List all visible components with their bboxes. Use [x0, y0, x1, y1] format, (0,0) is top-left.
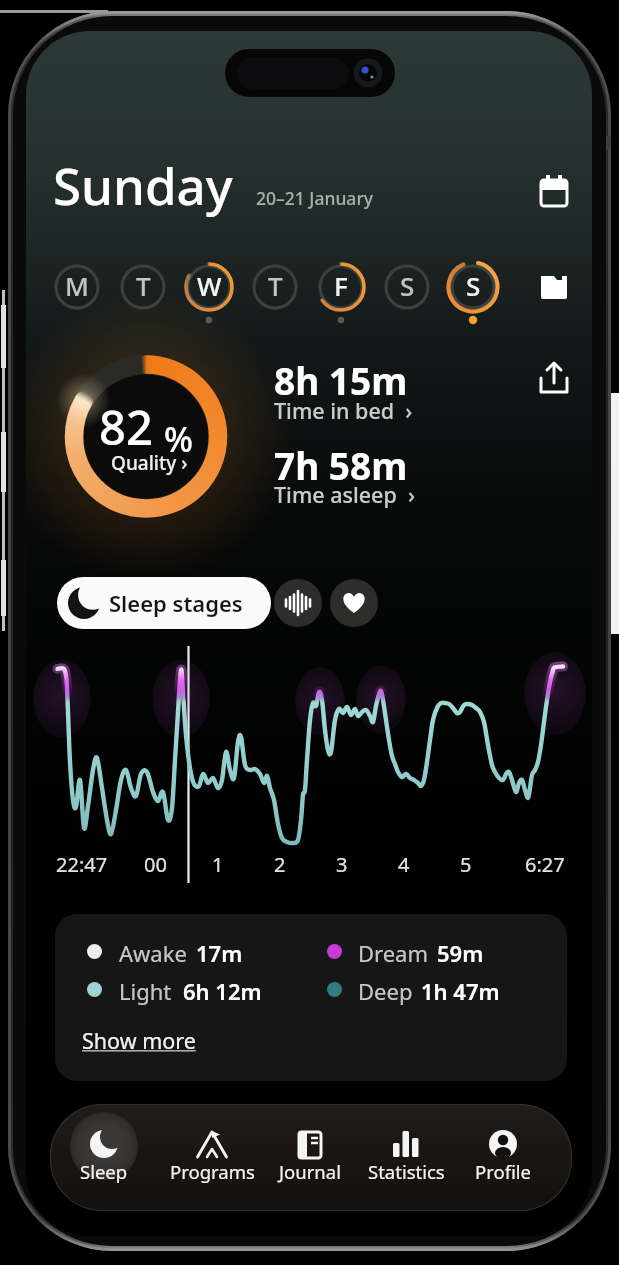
staticText: W: [197, 268, 222, 303]
staticText: Quality ›: [111, 450, 188, 476]
staticText: T: [136, 268, 151, 303]
staticText: 3: [336, 851, 348, 878]
button[interactable]: Statistics: [360, 1108, 452, 1206]
staticText: 4: [398, 851, 410, 878]
button[interactable]: Programs: [166, 1108, 258, 1206]
staticText: Profile: [475, 1159, 531, 1184]
staticText: 5: [460, 851, 472, 878]
button[interactable]: [48, 340, 244, 536]
button[interactable]: M: [51, 258, 103, 328]
staticText: 8h 15m: [274, 355, 408, 405]
staticText: Journal: [279, 1159, 341, 1184]
button[interactable]: T: [249, 258, 301, 328]
staticText: 82: [99, 395, 153, 459]
button[interactable]: Time in bed ›: [274, 396, 413, 425]
staticText: 20–21 January: [256, 186, 374, 210]
staticText: 22:47: [56, 851, 108, 878]
staticText: Statistics: [368, 1159, 445, 1184]
staticText: T: [268, 268, 283, 303]
staticText: F: [334, 268, 348, 303]
staticText: Light: [119, 976, 172, 1006]
staticText: 2: [274, 851, 286, 878]
staticText: M: [65, 268, 89, 303]
button[interactable]: S: [447, 258, 499, 328]
staticText: Dream: [358, 938, 429, 968]
staticText: 6:27: [525, 851, 565, 878]
button[interactable]: S: [381, 258, 433, 328]
staticText: Sunday: [53, 150, 233, 219]
staticText: Programs: [170, 1159, 255, 1184]
button[interactable]: W: [183, 258, 235, 328]
staticText: Sleep stages: [109, 588, 243, 618]
staticText: Time in bed ›: [274, 396, 413, 425]
staticText: 6h 12m: [183, 976, 262, 1006]
button[interactable]: [330, 579, 378, 627]
button[interactable]: [536, 170, 574, 212]
staticText: Awake: [119, 938, 187, 968]
button[interactable]: Show more: [82, 1026, 196, 1055]
staticText: Deep: [358, 976, 413, 1006]
button[interactable]: T: [117, 258, 169, 328]
button[interactable]: Sleep: [58, 1108, 150, 1206]
button[interactable]: [536, 268, 574, 304]
staticText: 00: [144, 851, 167, 878]
staticText: S: [400, 268, 415, 303]
staticText: 59m: [437, 938, 484, 968]
staticText: 1h 47m: [421, 976, 500, 1006]
staticText: S: [466, 268, 481, 303]
button[interactable]: Sleep stages: [57, 577, 271, 629]
button[interactable]: Time asleep ›: [274, 480, 415, 509]
staticText: Time asleep ›: [274, 480, 415, 509]
button[interactable]: Profile: [457, 1108, 549, 1206]
staticText: %: [164, 416, 193, 462]
staticText: 17m: [196, 938, 243, 968]
staticText: Sleep: [80, 1159, 128, 1184]
button[interactable]: Journal: [264, 1108, 356, 1206]
staticText: 7h 58m: [274, 440, 408, 490]
button[interactable]: F: [315, 258, 367, 328]
button[interactable]: [274, 579, 322, 627]
button[interactable]: [534, 356, 574, 398]
staticText: Show more: [82, 1026, 196, 1055]
staticText: 1: [212, 851, 224, 878]
